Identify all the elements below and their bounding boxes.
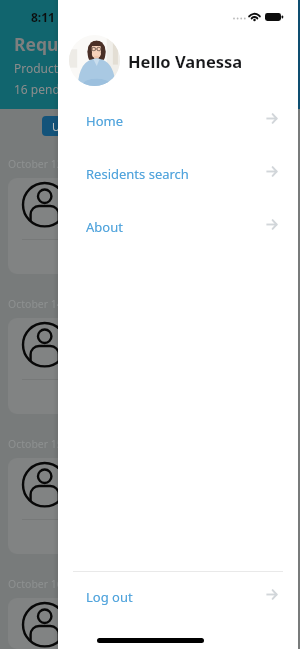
staticText: October 16 — [8, 577, 63, 591]
staticText: 8:11 — [31, 9, 55, 25]
staticText: October 15 — [8, 437, 63, 451]
staticText: 16 pending — [14, 81, 78, 97]
staticText: Hello Vanessa — [128, 50, 243, 72]
staticText: Production — [14, 60, 76, 76]
staticText: October 14 — [8, 297, 63, 311]
other: Status icons — [233, 10, 289, 24]
button[interactable]: Log out — [58, 580, 298, 614]
staticText: Update — [52, 119, 90, 134]
staticText: October 12 — [8, 157, 63, 171]
button[interactable]: Residents search — [58, 157, 298, 191]
button[interactable]: Home — [58, 104, 298, 138]
staticText: Log out — [86, 588, 133, 606]
staticText: Home — [86, 112, 123, 130]
staticText: Requests — [14, 32, 94, 56]
button[interactable]: About — [58, 210, 298, 244]
staticText: About — [86, 218, 123, 236]
staticText: Residents search — [86, 165, 189, 183]
